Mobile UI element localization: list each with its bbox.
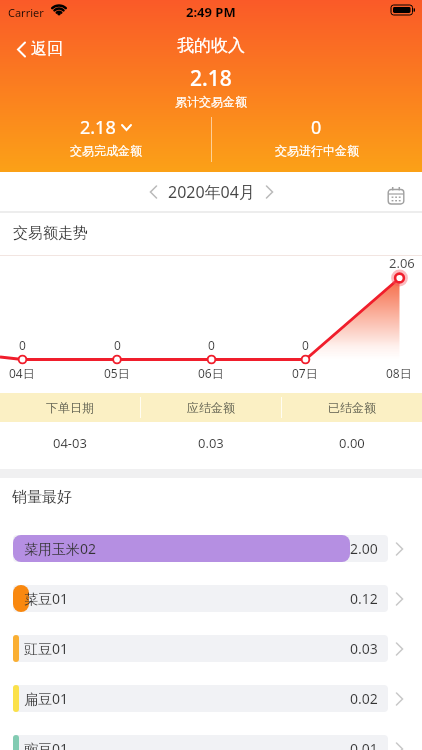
staticText: 2.18: [80, 115, 116, 140]
staticText: 豌豆01: [24, 739, 69, 750]
button[interactable]: 扁豆01: [0, 685, 422, 712]
staticText: 04日: [9, 365, 35, 381]
staticText: 2.00: [350, 539, 378, 558]
staticText: 0: [302, 337, 309, 353]
staticText: 应结金额: [187, 400, 235, 415]
staticText: 累计交易金额: [175, 94, 247, 109]
staticText: 2.06: [389, 254, 415, 272]
staticText: 08日: [386, 365, 412, 381]
staticText: 扁豆01: [24, 689, 69, 708]
button[interactable]: [387, 185, 405, 205]
staticText: 0: [19, 337, 26, 353]
staticText: 0.00: [339, 434, 365, 452]
staticText: 07日: [292, 365, 318, 381]
staticText: 交易额走势: [13, 224, 88, 243]
staticText: 返回: [31, 39, 63, 59]
staticText: 0: [208, 337, 215, 353]
staticText: 04-03: [53, 434, 87, 452]
button[interactable]: 豌豆01: [0, 735, 422, 750]
staticText: 0.03: [350, 639, 378, 658]
button[interactable]: 菜用玉米02: [0, 535, 422, 562]
staticText: 销量最好: [12, 488, 72, 507]
staticText: 0: [311, 115, 322, 140]
staticText: 2:49 PM: [186, 3, 236, 21]
staticText: Carrier: [8, 5, 44, 20]
staticText: 05日: [104, 365, 130, 381]
staticText: 2020年04月: [168, 181, 255, 203]
button[interactable]: 豇豆01: [0, 635, 422, 662]
button[interactable]: 2020年04月: [141, 181, 282, 203]
staticText: 0.01: [350, 739, 378, 750]
button[interactable]: 04-03: [0, 422, 422, 469]
button[interactable]: 返回: [10, 33, 69, 65]
staticText: 交易进行中金额: [275, 143, 359, 158]
staticText: 豇豆01: [24, 639, 69, 658]
staticText: 0.03: [198, 434, 224, 452]
staticText: 06日: [198, 365, 224, 381]
staticText: 我的收入: [177, 35, 245, 56]
staticText: 下单日期: [46, 400, 94, 415]
staticText: 菜用玉米02: [24, 539, 97, 558]
button[interactable]: 2.18: [0, 114, 211, 164]
button[interactable]: 菜豆01: [0, 585, 422, 612]
staticText: 菜豆01: [24, 589, 69, 608]
staticText: 0.02: [350, 689, 378, 708]
staticText: 0: [114, 337, 121, 353]
staticText: 0.12: [350, 589, 378, 608]
staticText: 交易完成金额: [70, 143, 142, 158]
staticText: 2.18: [190, 64, 232, 93]
staticText: 已结金额: [328, 400, 376, 415]
